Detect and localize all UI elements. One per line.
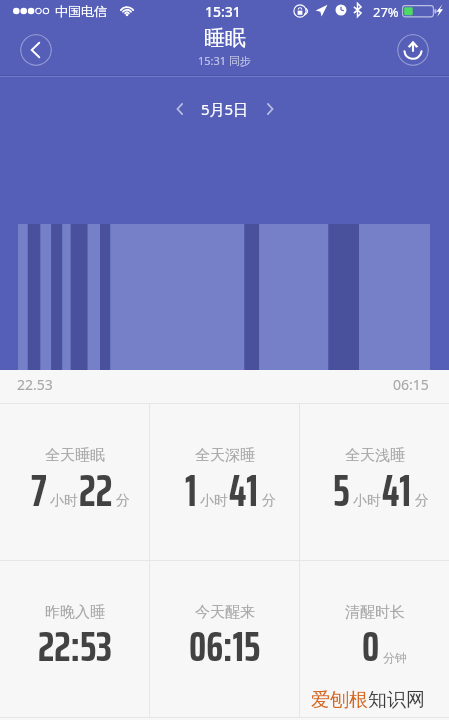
staticText: 小时	[353, 492, 381, 510]
staticText: 清醒时长	[345, 603, 405, 622]
button[interactable]: Next day	[255, 94, 285, 124]
staticText: 5月5日	[201, 99, 249, 119]
staticText: 1	[185, 456, 197, 525]
staticText: 5	[333, 456, 350, 525]
staticText: 分	[415, 492, 429, 510]
staticText: 分钟	[383, 650, 407, 665]
button[interactable]: Previous day	[165, 94, 195, 124]
button[interactable]: 清醒时长	[300, 561, 449, 717]
staticText: 全天睡眠	[45, 446, 105, 465]
staticText: 0	[362, 612, 380, 680]
staticText: 分	[116, 492, 130, 510]
staticText: 06:15	[189, 612, 261, 680]
staticText: 22:53	[38, 612, 112, 680]
staticText: 知识网	[368, 688, 425, 712]
staticText: 爱刨根	[311, 688, 368, 712]
button[interactable]: 全天睡眠	[0, 404, 149, 560]
staticText: 22.53	[17, 375, 53, 394]
staticText: 41	[229, 456, 259, 525]
staticText: 15:31 同步	[198, 53, 251, 68]
staticText: 7	[31, 456, 47, 525]
staticText: 小时	[50, 492, 78, 510]
button[interactable]: 全天深睡	[150, 404, 299, 560]
staticText: 全天深睡	[195, 446, 255, 465]
staticText: 昨晚入睡	[45, 603, 105, 622]
button[interactable]: 昨晚入睡	[0, 561, 149, 717]
button[interactable]: 今天醒来	[150, 561, 299, 717]
button[interactable]: Share	[397, 34, 429, 66]
staticText: 今天醒来	[195, 603, 255, 622]
staticText: 小时	[200, 492, 228, 510]
staticText: 22	[79, 456, 113, 525]
staticText: 15:31	[205, 2, 241, 21]
staticText: 睡眠	[204, 25, 246, 51]
staticText: 分	[262, 492, 276, 510]
staticText: 全天浅睡	[345, 446, 405, 465]
button[interactable]: Back	[20, 34, 52, 66]
staticText: 41	[382, 456, 412, 525]
staticText: 06:15	[393, 375, 429, 394]
staticText: 中国电信	[55, 3, 107, 19]
button[interactable]: 全天浅睡	[300, 404, 449, 560]
staticText: 27%	[373, 3, 399, 21]
